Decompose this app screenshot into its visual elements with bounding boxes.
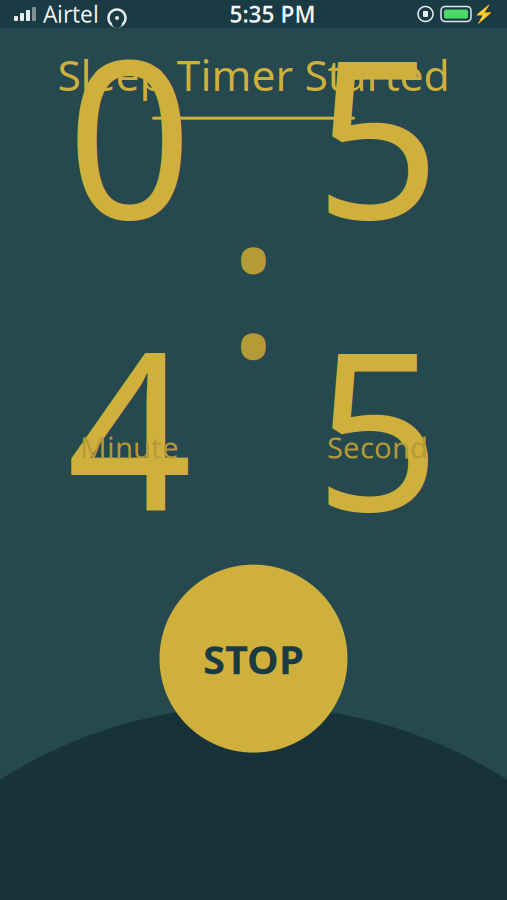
staticText: 55	[314, 0, 440, 572]
staticText: 04	[66, 0, 192, 572]
staticText: Airtel	[43, 0, 99, 29]
staticText: Sleep Timer Started	[57, 46, 449, 103]
staticText: STOP	[203, 632, 304, 685]
staticText: 5:35 PM	[229, 0, 315, 29]
staticText: Second	[327, 428, 428, 467]
button[interactable]: STOP	[159, 565, 347, 753]
staticText: :	[226, 147, 280, 412]
staticText: ⚡	[473, 4, 495, 24]
staticText: Minute	[80, 428, 179, 467]
